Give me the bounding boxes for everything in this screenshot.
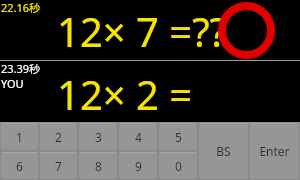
staticText: 22.16秒 xyxy=(1,0,41,15)
staticText: 12× 7 =?? xyxy=(57,4,227,58)
button[interactable]: 8 xyxy=(79,152,117,179)
staticText: 1 xyxy=(16,129,23,145)
button[interactable]: 9 xyxy=(119,152,157,179)
staticText: 8 xyxy=(95,158,102,174)
staticText: 3 xyxy=(95,129,102,145)
staticText: 0 xyxy=(175,158,182,174)
staticText: Enter xyxy=(259,143,290,159)
staticText: 7 xyxy=(55,158,62,174)
staticText: 2 xyxy=(55,129,62,145)
button[interactable]: Backspace xyxy=(199,123,248,179)
staticText: YOU xyxy=(1,76,24,91)
button[interactable]: 7 xyxy=(40,152,77,179)
button[interactable]: 2 xyxy=(40,123,77,150)
staticText: 5 xyxy=(175,129,182,145)
button[interactable]: 4 xyxy=(119,123,157,150)
staticText: 4 xyxy=(135,129,142,145)
staticText: 6 xyxy=(16,158,23,174)
button[interactable]: 1 xyxy=(1,123,38,150)
button[interactable]: Enter xyxy=(250,123,299,179)
button[interactable]: 0 xyxy=(159,152,197,179)
staticText: 9 xyxy=(135,158,142,174)
staticText: 23.39秒 xyxy=(1,61,41,76)
staticText: BS xyxy=(216,143,231,159)
button[interactable]: 5 xyxy=(159,123,197,150)
button[interactable]: 6 xyxy=(1,152,38,179)
button[interactable]: 3 xyxy=(79,123,117,150)
staticText: 12× 2 = xyxy=(57,67,193,121)
